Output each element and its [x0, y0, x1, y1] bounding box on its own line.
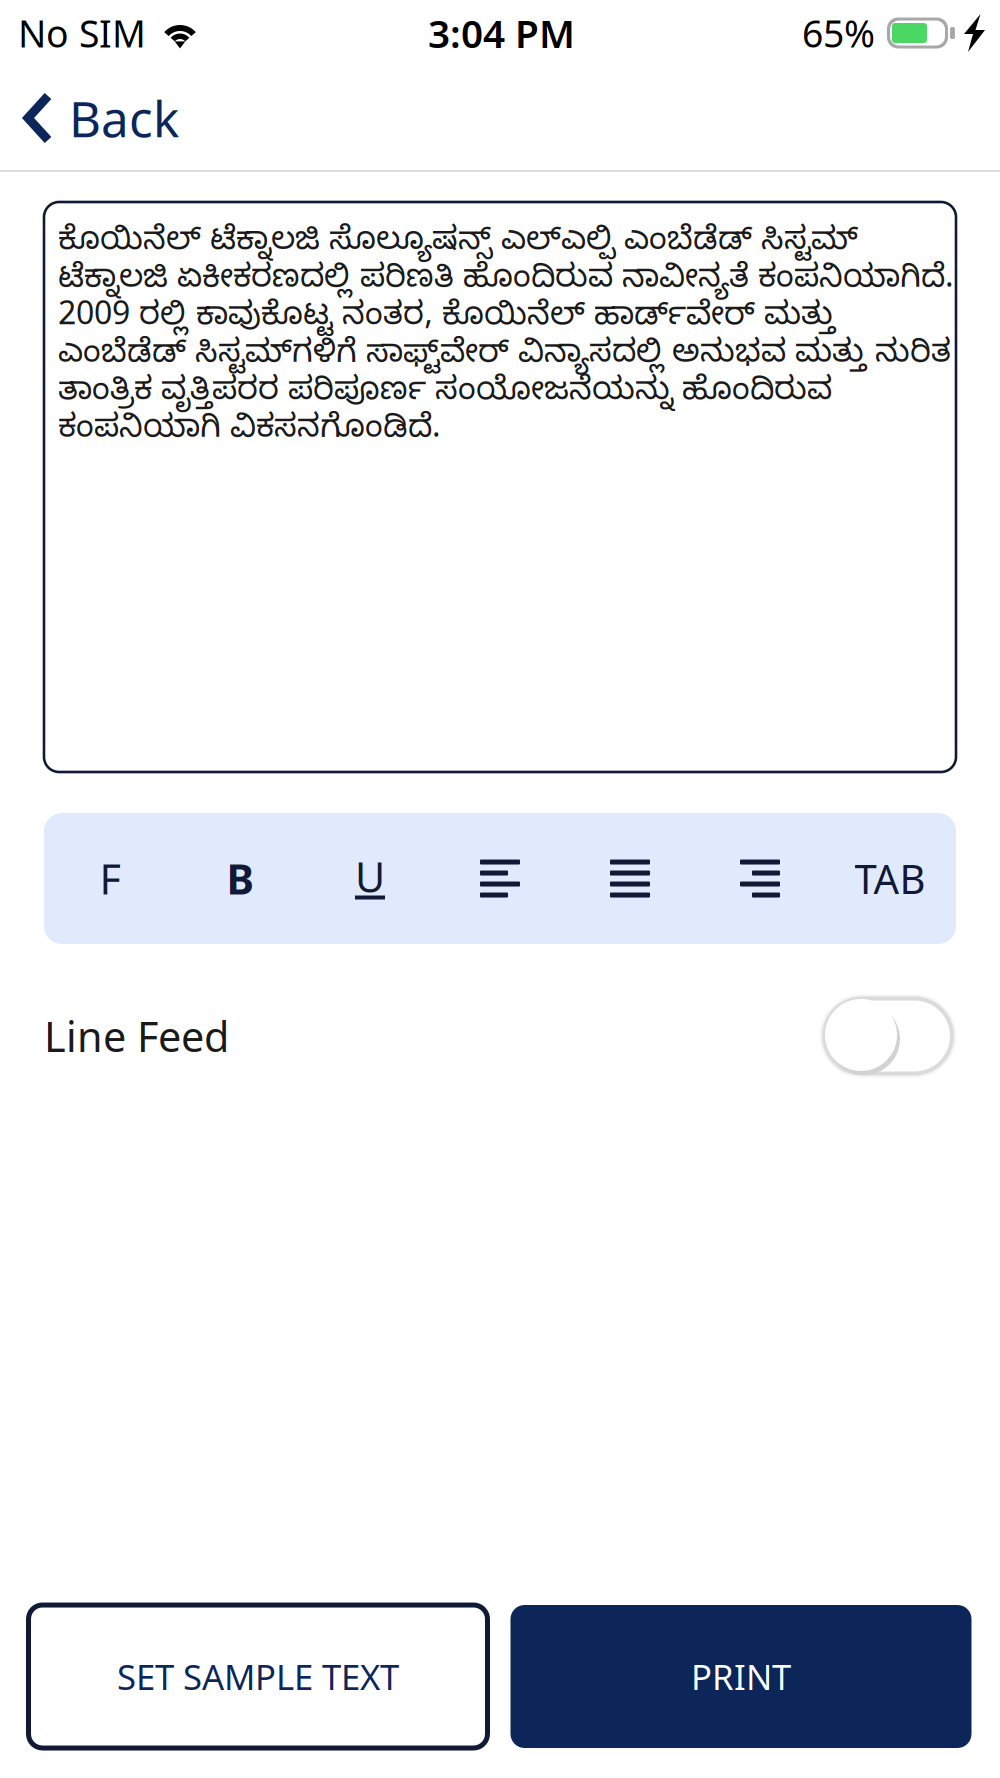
staticText: F — [99, 851, 120, 906]
staticText: TAB — [854, 852, 925, 905]
staticText: B — [226, 851, 253, 906]
button[interactable] — [695, 813, 825, 944]
staticText: ಕೊಯಿನೆಲ್ ಟೆಕ್ನಾಲಜಿ ಸೊಲ್ಯೂಷನ್ಸ್ ಎಲ್ಎಲ್ಪಿ … — [58, 226, 954, 451]
button[interactable] — [435, 813, 565, 944]
staticText: Back — [69, 85, 179, 151]
staticText: 65% — [802, 8, 875, 58]
button[interactable]: PRINT — [510, 1605, 971, 1748]
staticText: SET SAMPLE TEXT — [117, 1653, 399, 1699]
button[interactable]: Line Feed — [820, 994, 956, 1077]
button[interactable]: B — [175, 813, 305, 944]
staticText: U — [355, 849, 385, 904]
staticText: Line Feed — [44, 1009, 229, 1063]
button[interactable]: TAB — [825, 813, 955, 944]
staticText: PRINT — [691, 1653, 791, 1699]
button[interactable]: SET SAMPLE TEXT — [28, 1605, 487, 1748]
button[interactable]: U — [305, 813, 435, 944]
staticText: 3:04 PM — [428, 7, 575, 59]
button[interactable] — [565, 813, 695, 944]
staticText: No SIM — [18, 8, 146, 58]
button[interactable]: Back — [0, 66, 197, 170]
button[interactable]: F — [45, 813, 175, 944]
